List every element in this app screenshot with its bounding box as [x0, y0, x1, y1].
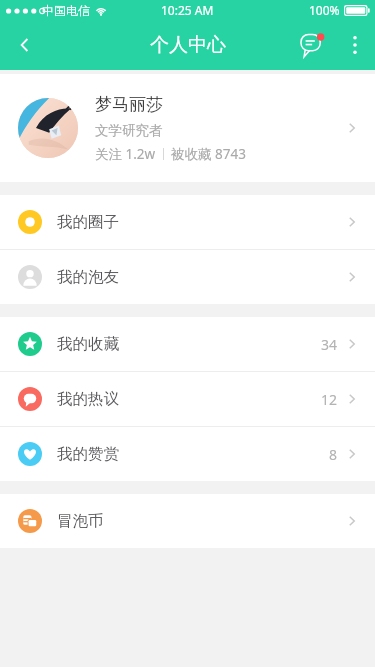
staticText: 10:25 AM — [161, 2, 214, 18]
staticText: 冒泡币 — [57, 511, 104, 531]
staticText: 关注 1.2w — [95, 145, 156, 163]
staticText: 我的泡友 — [57, 267, 119, 287]
staticText: 中国电信 — [42, 3, 90, 18]
button[interactable]: 我的赞赏 — [0, 427, 375, 481]
button[interactable]: 冒泡币 — [0, 494, 375, 548]
staticText: 我的圈子 — [57, 212, 119, 232]
staticText: 被收藏 8743 — [171, 145, 246, 163]
staticText: 文学研究者 — [95, 122, 163, 139]
staticText: 我的收藏 — [57, 334, 119, 354]
button[interactable]: 我的收藏 — [0, 317, 375, 371]
button[interactable]: 我的泡友 — [0, 250, 375, 304]
button[interactable]: 梦马丽莎 — [0, 74, 375, 182]
staticText: 个人中心 — [150, 33, 226, 57]
staticText: 我的赞赏 — [57, 444, 119, 464]
staticText: 我的热议 — [57, 389, 119, 409]
staticText: 100% — [309, 2, 340, 18]
staticText: 34 — [321, 335, 338, 354]
staticText: 12 — [321, 390, 338, 409]
button[interactable]: 我的圈子 — [0, 195, 375, 249]
staticText: 8 — [329, 445, 338, 464]
button[interactable]: 我的热议 — [0, 372, 375, 426]
button[interactable]: Back — [0, 20, 50, 70]
staticText: 梦马丽莎 — [95, 94, 163, 115]
button[interactable]: More options — [335, 25, 375, 65]
button[interactable]: Messages — [291, 23, 335, 67]
